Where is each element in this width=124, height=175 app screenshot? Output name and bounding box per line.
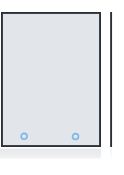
button[interactable]: Scroll bar [109, 12, 113, 147]
button[interactable]: Form field [71, 133, 79, 141]
button[interactable]: Form field [20, 133, 28, 141]
button[interactable]: Document page [1, 12, 101, 147]
